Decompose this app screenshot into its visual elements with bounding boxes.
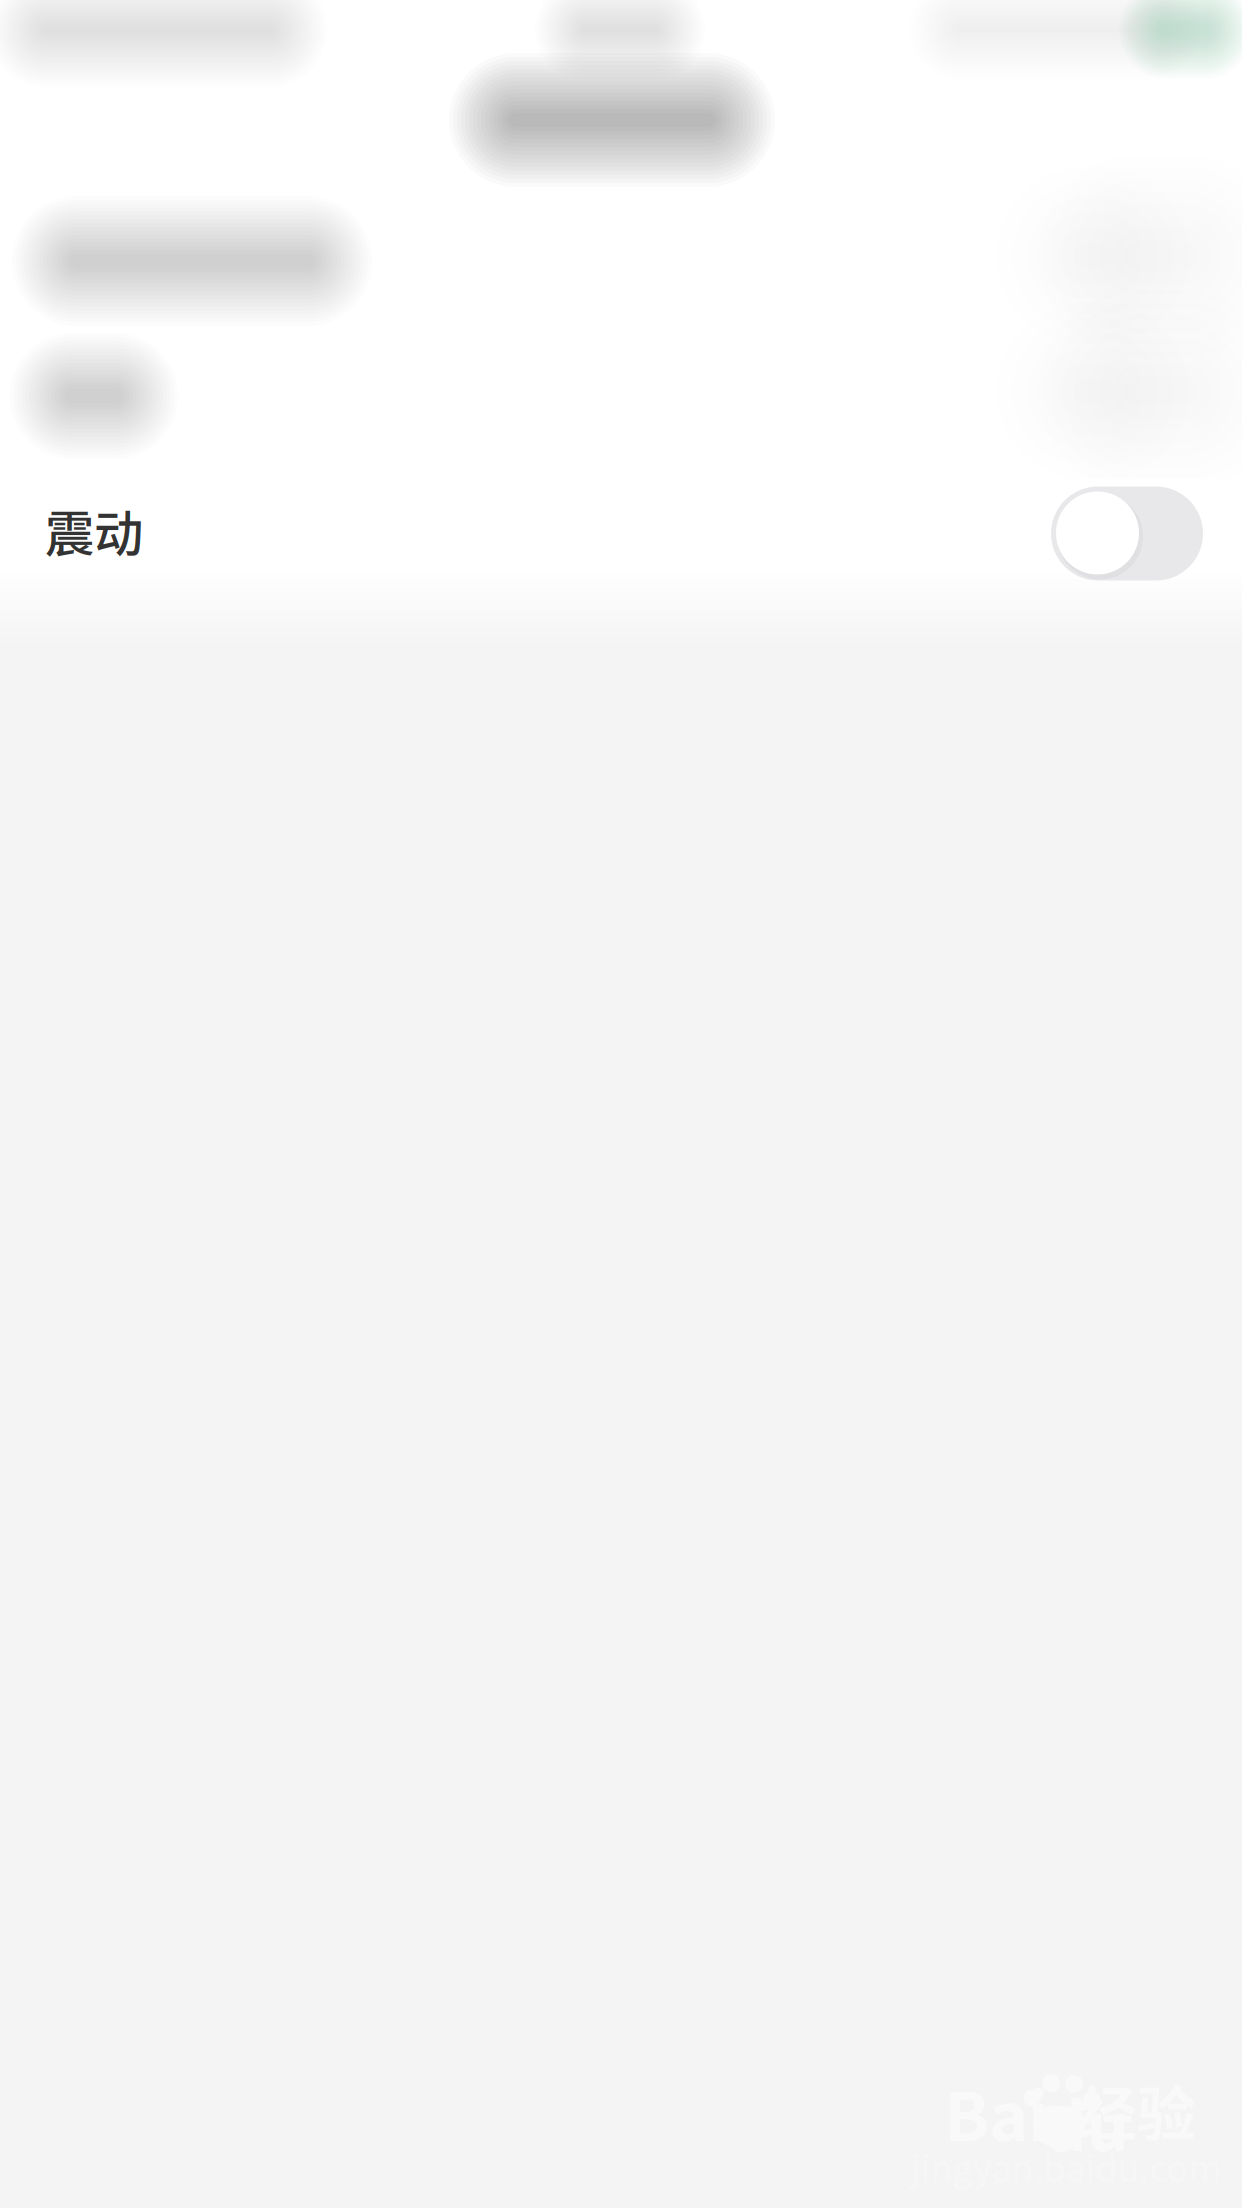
staticText: 震动 bbox=[45, 494, 143, 566]
button[interactable]: 震动 bbox=[0, 479, 1242, 572]
